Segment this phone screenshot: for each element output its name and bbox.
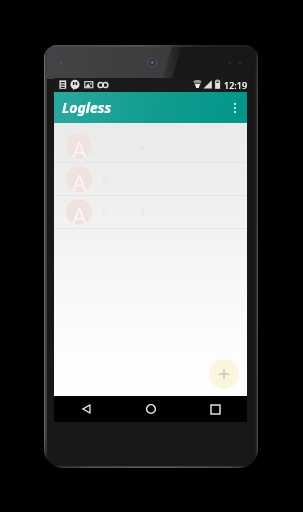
button[interactable]: A bbox=[54, 196, 247, 229]
staticText: Logless bbox=[62, 98, 112, 117]
button[interactable]: A bbox=[54, 130, 247, 163]
staticText: A bbox=[72, 166, 87, 192]
button[interactable]: Recent apps bbox=[183, 396, 247, 422]
button[interactable]: More options bbox=[223, 92, 247, 123]
staticText: A bbox=[72, 199, 87, 225]
staticText: 12:19 bbox=[224, 79, 248, 91]
button[interactable]: Add bbox=[209, 359, 239, 389]
staticText: 1 bbox=[140, 206, 146, 218]
staticText: A bbox=[72, 133, 87, 159]
button[interactable]: A bbox=[54, 163, 247, 196]
button[interactable]: Back bbox=[54, 396, 119, 422]
button[interactable]: Home bbox=[119, 396, 183, 422]
